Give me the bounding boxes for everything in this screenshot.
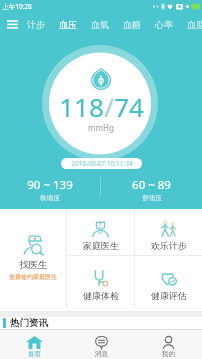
staticText: 60 ~ 89 <box>132 177 171 193</box>
staticText: 健康评估 <box>151 290 187 301</box>
button[interactable]: 欢乐计步 <box>135 209 202 255</box>
staticText: 欢乐计步 <box>151 240 187 251</box>
staticText: 首页 <box>28 350 41 358</box>
button[interactable]: Menu <box>0 13 25 35</box>
button[interactable]: 健康评估 <box>135 256 202 308</box>
staticText: 舒张压 <box>142 194 162 201</box>
staticText: 消息 <box>95 350 108 358</box>
button[interactable]: 血脂 <box>180 13 202 35</box>
staticText: 找医生 <box>19 259 48 271</box>
button[interactable]: 心率 <box>148 13 180 35</box>
staticText: 热门资讯 <box>10 317 48 329</box>
staticText: 心率 <box>155 19 173 30</box>
button[interactable]: 计步 <box>20 13 52 35</box>
staticText: 计步 <box>27 19 45 30</box>
staticText: 血氧 <box>91 19 109 30</box>
staticText: 收缩压 <box>40 194 60 201</box>
button[interactable]: 血糖 <box>116 13 148 35</box>
staticText: 免费签约家庭医生 <box>9 273 57 281</box>
button[interactable]: 找医生 <box>0 209 66 308</box>
staticText: 74 <box>114 89 144 124</box>
button[interactable]: 血氧 <box>84 13 116 35</box>
staticText: / <box>104 89 114 124</box>
button[interactable]: 健康体检 <box>67 256 134 308</box>
button[interactable]: 消息 <box>68 330 135 359</box>
staticText: 118 <box>59 89 104 124</box>
staticText: mmHg <box>88 122 114 133</box>
button[interactable]: 首页 <box>0 330 68 359</box>
button[interactable]: 我的 <box>135 330 202 359</box>
staticText: 90 ~ 139 <box>27 177 73 193</box>
button[interactable]: 血压 <box>52 13 84 35</box>
staticText: 家庭医生 <box>83 240 119 251</box>
staticText: 2016-09-07 10:11:34 <box>71 159 133 168</box>
staticText: 我的 <box>162 350 175 358</box>
button[interactable]: 家庭医生 <box>67 209 134 255</box>
staticText: 血脂 <box>187 19 202 30</box>
staticText: 健康体检 <box>83 290 119 301</box>
staticText: 血糖 <box>123 19 141 30</box>
button[interactable]: 2016-09-07 10:11:34 <box>61 158 142 169</box>
staticText: 血压 <box>59 19 77 30</box>
staticText: 上午10:28 <box>2 2 32 11</box>
